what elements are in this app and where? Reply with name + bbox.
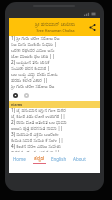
staticText: Home	[13, 156, 26, 162]
staticText: ಬರನೌ ರಘುವರ ವಿಮಲ ಜಸು	[11, 47, 55, 53]
button[interactable]: ಕನ್ನಡ	[29, 153, 49, 173]
staticText: ಬಲ ಬುದ್ಧಿ ವಿದ್ಯಾ ದೇಹು ಮೋಹಿ	[11, 71, 58, 77]
staticText: ದೋಹಾ	[11, 103, 23, 107]
button[interactable]: Play	[12, 92, 19, 99]
staticText: 3) ಮಹಾವೀರ ವಿಕ್ರಮ ಬಜರಂಗೀ	[11, 131, 59, 137]
staticText: ಜೋ ದಾಯಕು ಫಲ ಚಾರಿ ||	[11, 53, 55, 59]
button[interactable]: Home	[9, 153, 29, 173]
staticText: ಶ್ರೀ ಹನುಮಾನ್ ಚಾಲೀಸಾ	[35, 21, 75, 28]
staticText: English	[51, 156, 67, 162]
staticText: 2) ಬುದ್ಧಿಹೀನ ತನು ಜಾನಿಕೆ	[11, 59, 50, 65]
staticText: ಜೈ ಕಪೀಶ ತಿಹು ಲೋಕ ಉಜಾಗರ ||	[11, 113, 66, 119]
button[interactable]: Stop	[23, 92, 30, 99]
staticText: ಕಾನನ ಕುಂಡಲ ಕುಂಚಿತ ಕೇಶಾ ||	[11, 149, 60, 152]
staticText: ಹರಹು ಕಲೇಶ ವಿಕಾರ ||	[11, 77, 49, 83]
staticText: Sree Hanuman Chalisa	[36, 28, 75, 33]
staticText: ನಿಜ ಮನು ಮುಕುರು ಸುಧಾರಿ |	[11, 41, 57, 47]
staticText: 1) ಜೈ ಹನುಮಾನ ಙ್ಞಾನ ಗುಣ ಸಾಗರ	[11, 107, 66, 113]
staticText: ಕನ್ನಡ	[34, 156, 44, 162]
staticText: ಸುಮಿರೌ ಪವನ ಕುಮಾರ |	[11, 65, 50, 71]
button[interactable]: English	[49, 153, 69, 173]
staticText: 4) ಕಂಚನ ವರಣ ವಿರಾಜ ಸುವೇಶಾ	[11, 143, 61, 149]
staticText: ಅಂಜನಿ ಪುತ್ರ ಪವನಸುತ ನಾಮಾ ||	[11, 125, 63, 131]
staticText: ಶ್ರೀ ಗುರು ಚರಣ ಸರೋಜ ರಜ	[11, 83, 55, 89]
staticText: 1) ಶ್ರೀ ಗುರು ಚರಣ ಸರೋಜ ರಜ	[11, 35, 60, 41]
staticText: About	[73, 156, 86, 162]
staticText: ಕುಮತಿ ನಿವಾರ ಸುಮತಿ ಕೆ ಸಂಗೀ ||	[11, 137, 64, 143]
button[interactable]: About	[69, 153, 89, 173]
staticText: 2) ರಾಮ ದೂತ ಅತುಲಿತ ಬಲ ಧಾಮಾ	[11, 119, 67, 125]
button[interactable]: Share	[87, 22, 98, 33]
